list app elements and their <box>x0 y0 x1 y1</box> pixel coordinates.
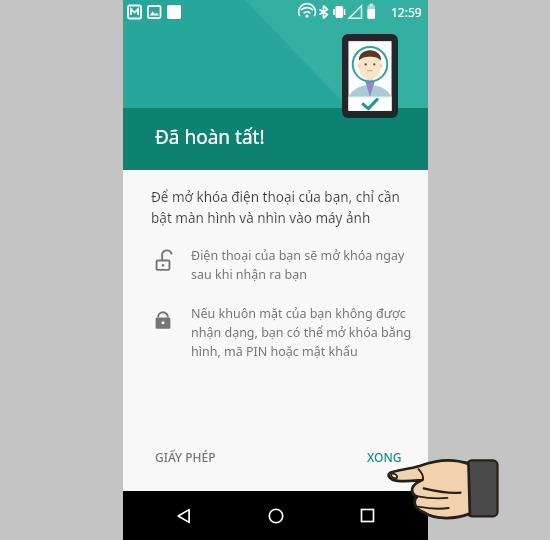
other: Locked <box>153 307 173 331</box>
other: Unlocked <box>153 249 173 273</box>
staticText: Đã hoàn tất! <box>155 124 265 150</box>
staticText: GIẤY PHÉP <box>155 449 216 465</box>
button[interactable]: XONG <box>341 439 428 475</box>
button[interactable]: Back <box>154 491 214 540</box>
staticText: XONG <box>367 449 402 465</box>
staticText: 12:59 <box>391 4 422 20</box>
staticText: Để mở khóa điện thoại của bạn, chỉ cần b… <box>151 188 400 227</box>
button[interactable]: Unlocked <box>123 249 428 285</box>
staticText: Nếu khuôn mặt của bạn không được nhận dạ… <box>191 305 412 360</box>
button[interactable]: GIẤY PHÉP <box>123 439 248 475</box>
staticText: Điện thoại của bạn sẽ mở khóa ngay sau k… <box>191 247 405 283</box>
button[interactable]: Recent apps <box>337 491 397 540</box>
button[interactable]: Home <box>246 491 306 540</box>
button[interactable]: Locked <box>123 307 428 362</box>
